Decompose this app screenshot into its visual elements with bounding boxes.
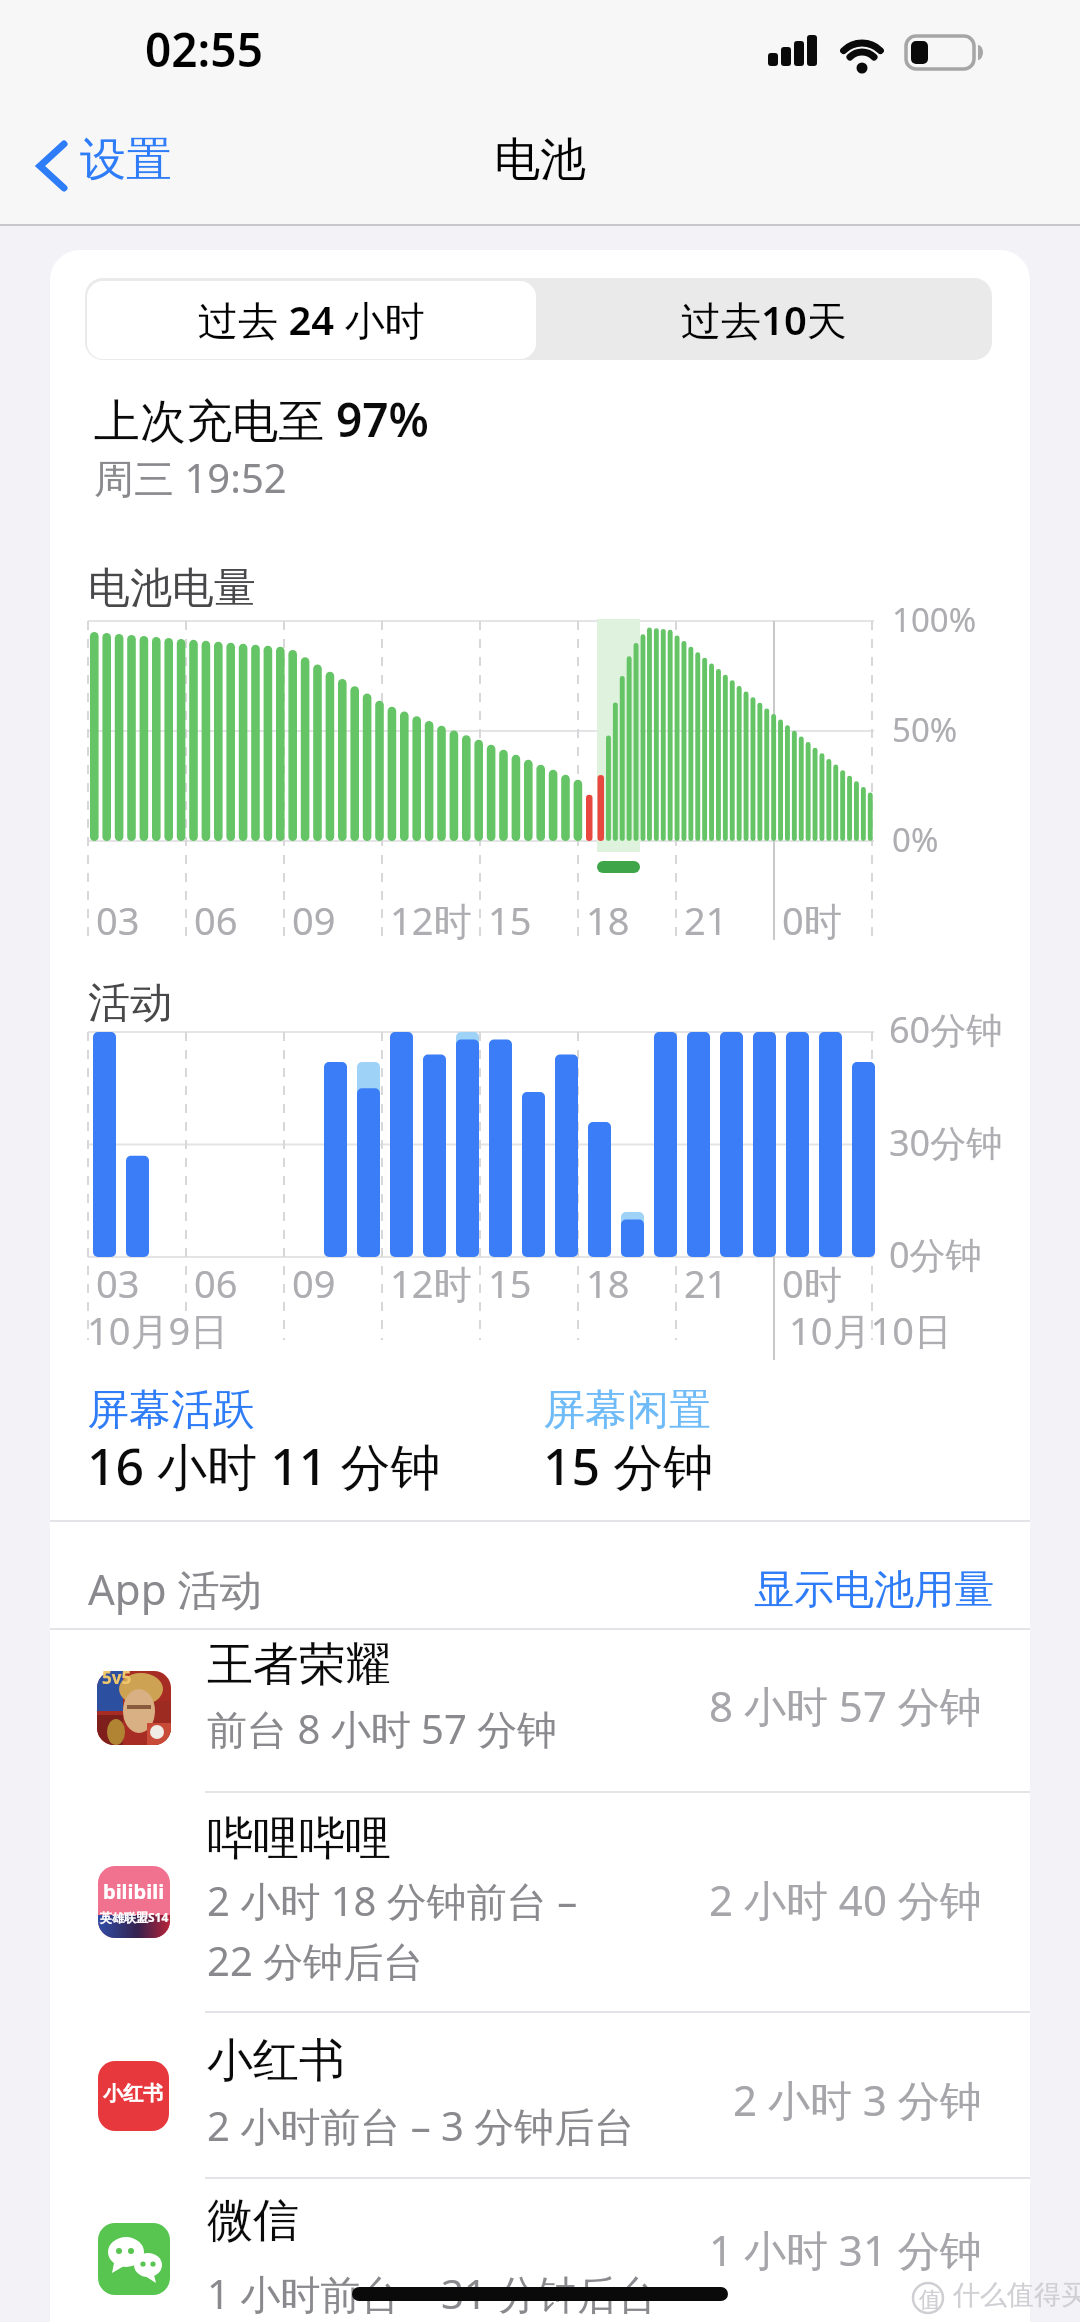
staticText: 活动 xyxy=(88,977,172,1030)
staticText: 02:55 xyxy=(145,18,263,81)
staticText: 值 xyxy=(919,2286,941,2314)
staticText: 2 小时 18 分钟前台 – xyxy=(207,1873,578,1928)
staticText: 1 小时 31 分钟 xyxy=(709,2221,982,2278)
staticText: 21 xyxy=(684,1257,728,1309)
staticText: 03 xyxy=(96,894,140,946)
staticText: 微信 xyxy=(207,2192,299,2250)
button[interactable] xyxy=(50,2178,1030,2322)
staticText: 15 xyxy=(488,1257,532,1309)
staticText: 过去10天 xyxy=(681,292,847,347)
staticText: 0时 xyxy=(782,894,842,946)
staticText: 电池电量 xyxy=(88,562,256,615)
staticText: 09 xyxy=(292,1257,336,1309)
button[interactable] xyxy=(87,281,536,359)
staticText: 30分钟 xyxy=(889,1118,1003,1167)
staticText: 22 分钟后台 xyxy=(207,1933,424,1988)
staticText: 0时 xyxy=(782,1257,842,1309)
button[interactable]: 设置 xyxy=(80,131,172,189)
staticText: 屏幕活跃 xyxy=(87,1384,255,1437)
staticText: 2 小时 40 分钟 xyxy=(709,1871,982,1928)
staticText: 0分钟 xyxy=(889,1230,982,1279)
staticText: 10月10日 xyxy=(789,1304,952,1356)
staticText: 屏幕闲置 xyxy=(543,1384,711,1437)
button[interactable] xyxy=(536,281,992,359)
staticText: 周三 19:52 xyxy=(94,450,287,505)
staticText: bilibili xyxy=(103,1878,165,1905)
button[interactable] xyxy=(50,1630,1030,1792)
staticText: 12时 xyxy=(390,894,472,946)
staticText: 18 xyxy=(586,894,630,946)
staticText: 过去 24 小时 xyxy=(198,292,425,347)
staticText: 09 xyxy=(292,894,336,946)
staticText: 60分钟 xyxy=(889,1005,1003,1054)
button[interactable] xyxy=(34,140,74,192)
button[interactable] xyxy=(50,2012,1030,2178)
staticText: 15 分钟 xyxy=(543,1432,714,1500)
staticText: 12时 xyxy=(390,1257,472,1309)
staticText: 5v5 xyxy=(102,1666,132,1689)
staticText: 小红书 xyxy=(103,2081,163,2106)
staticText: App 活动 xyxy=(88,1560,262,1617)
staticText: 电池 xyxy=(494,131,586,189)
staticText: 0% xyxy=(892,817,939,862)
staticText: 英雄联盟S14 xyxy=(100,1909,169,1925)
staticText: 2 小时前台 – 3 分钟后台 xyxy=(207,2098,635,2153)
staticText: 50% xyxy=(892,707,958,752)
staticText: 前台 8 小时 57 分钟 xyxy=(207,1701,558,1756)
staticText: 1 小时前台 – 31 分钟后台 xyxy=(207,2266,658,2321)
staticText: 100% xyxy=(892,597,977,642)
button[interactable]: 显示电池用量 xyxy=(600,1564,994,1616)
staticText: 小红书 xyxy=(207,2032,345,2090)
staticText: 上次充电至 97% xyxy=(94,388,429,451)
staticText: 06 xyxy=(194,1257,238,1309)
staticText: 18 xyxy=(586,1257,630,1309)
staticText: 03 xyxy=(96,1257,140,1309)
staticText: 设置 xyxy=(80,131,172,189)
staticText: 2 小时 3 分钟 xyxy=(733,2071,982,2128)
staticText: 什么值得买 xyxy=(953,2278,1080,2312)
staticText: 10月9日 xyxy=(87,1304,229,1356)
staticText: 15 xyxy=(488,894,532,946)
staticText: 哔哩哔哩 xyxy=(207,1810,391,1868)
staticText: 16 小时 11 分钟 xyxy=(87,1432,441,1500)
staticText: 06 xyxy=(194,894,238,946)
staticText: 21 xyxy=(684,894,728,946)
staticText: 王者荣耀 xyxy=(207,1636,391,1694)
staticText: 显示电池用量 xyxy=(754,1564,994,1614)
staticText: 8 小时 57 分钟 xyxy=(709,1677,982,1734)
button[interactable] xyxy=(50,1792,1030,2012)
